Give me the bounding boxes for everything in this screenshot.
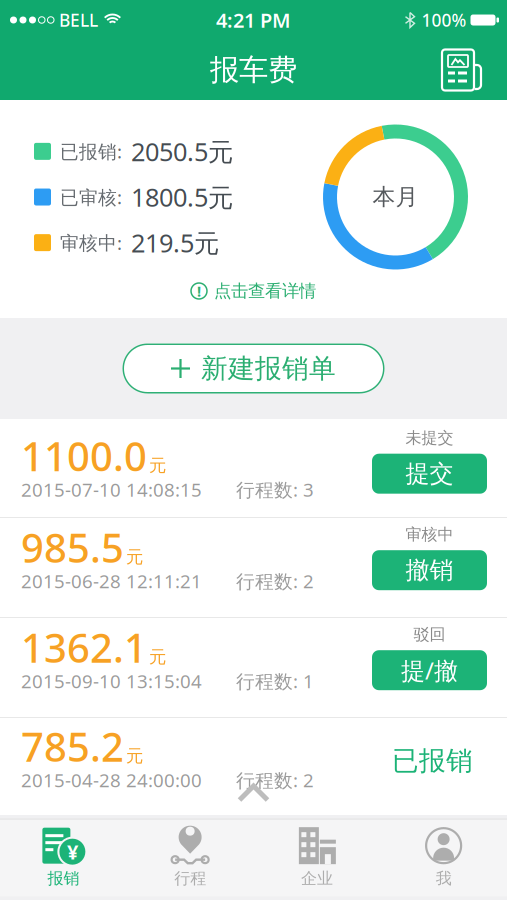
staticText: 2015-09-10 13:15:04 [21, 669, 202, 693]
staticText: 审核中: [60, 230, 122, 255]
staticText: 行程数: 2 [236, 569, 314, 593]
staticText: 已审核: [60, 185, 122, 209]
staticText: 219.5元 [131, 226, 219, 259]
staticText: 100% [421, 8, 466, 31]
staticText: ! [197, 281, 201, 301]
staticText: 2015-06-28 12:11:21 [21, 569, 202, 593]
staticText: 撤销 [405, 555, 453, 585]
staticText: 元 [149, 646, 166, 668]
staticText: 报车费 [210, 52, 297, 88]
button[interactable]: 收起 [239, 786, 267, 800]
staticText: 未提交 [405, 428, 453, 448]
staticText: 已报销: [60, 139, 122, 164]
staticText: 元 [126, 546, 143, 568]
staticText: 提交 [405, 459, 453, 488]
staticText: 行程数: 2 [236, 768, 314, 792]
staticText: 元 [149, 455, 166, 476]
staticText: 1362.1 [21, 620, 147, 674]
staticText: 我 [436, 869, 452, 888]
staticText: 本月 [372, 183, 418, 211]
staticText: 985.5 [21, 520, 124, 574]
staticText: 企业 [301, 869, 333, 888]
staticText: 785.2 [21, 719, 124, 773]
staticText: 驳回 [413, 624, 445, 644]
staticText: 2050.5元 [131, 134, 233, 168]
button[interactable]: 我 [380, 820, 507, 896]
button[interactable]: 提交 [372, 454, 487, 494]
button[interactable]: 报销单详情 [0, 718, 507, 815]
staticText: 新建报销单 [201, 352, 336, 385]
button[interactable]: 报表 [437, 47, 485, 93]
staticText: 行程 [174, 869, 206, 888]
button[interactable]: 报销单详情 [0, 419, 507, 517]
staticText: 行程数: 3 [236, 477, 314, 502]
staticText: 1100.0 [21, 429, 147, 482]
staticText: 2015-04-28 24:00:00 [21, 768, 202, 792]
button[interactable]: ! [191, 280, 316, 302]
button[interactable]: 新建报销单 [122, 343, 384, 393]
staticText: 点击查看详情 [214, 280, 316, 302]
staticText: 2015-07-10 14:08:15 [21, 477, 202, 502]
button[interactable]: 行程 [127, 820, 254, 896]
staticText: 4:21 PM [216, 7, 291, 33]
staticText: ¥ [67, 838, 78, 865]
button[interactable]: 企业 [253, 820, 380, 896]
button[interactable]: 提/撤 [372, 650, 487, 690]
staticText: 提/撤 [401, 654, 458, 686]
staticText: 1800.5元 [131, 180, 233, 214]
button[interactable]: 撤销 [372, 550, 487, 590]
staticText: 报销 [47, 869, 79, 888]
staticText: 审核中 [405, 524, 453, 544]
staticText: 行程数: 1 [236, 669, 314, 693]
staticText: BELL [59, 8, 98, 31]
button[interactable]: ¥ [0, 820, 127, 896]
staticText: 已报销 [392, 744, 473, 777]
button[interactable]: 报销单详情 [0, 518, 507, 617]
button[interactable]: 报销单详情 [0, 618, 507, 717]
staticText: 元 [126, 745, 143, 767]
